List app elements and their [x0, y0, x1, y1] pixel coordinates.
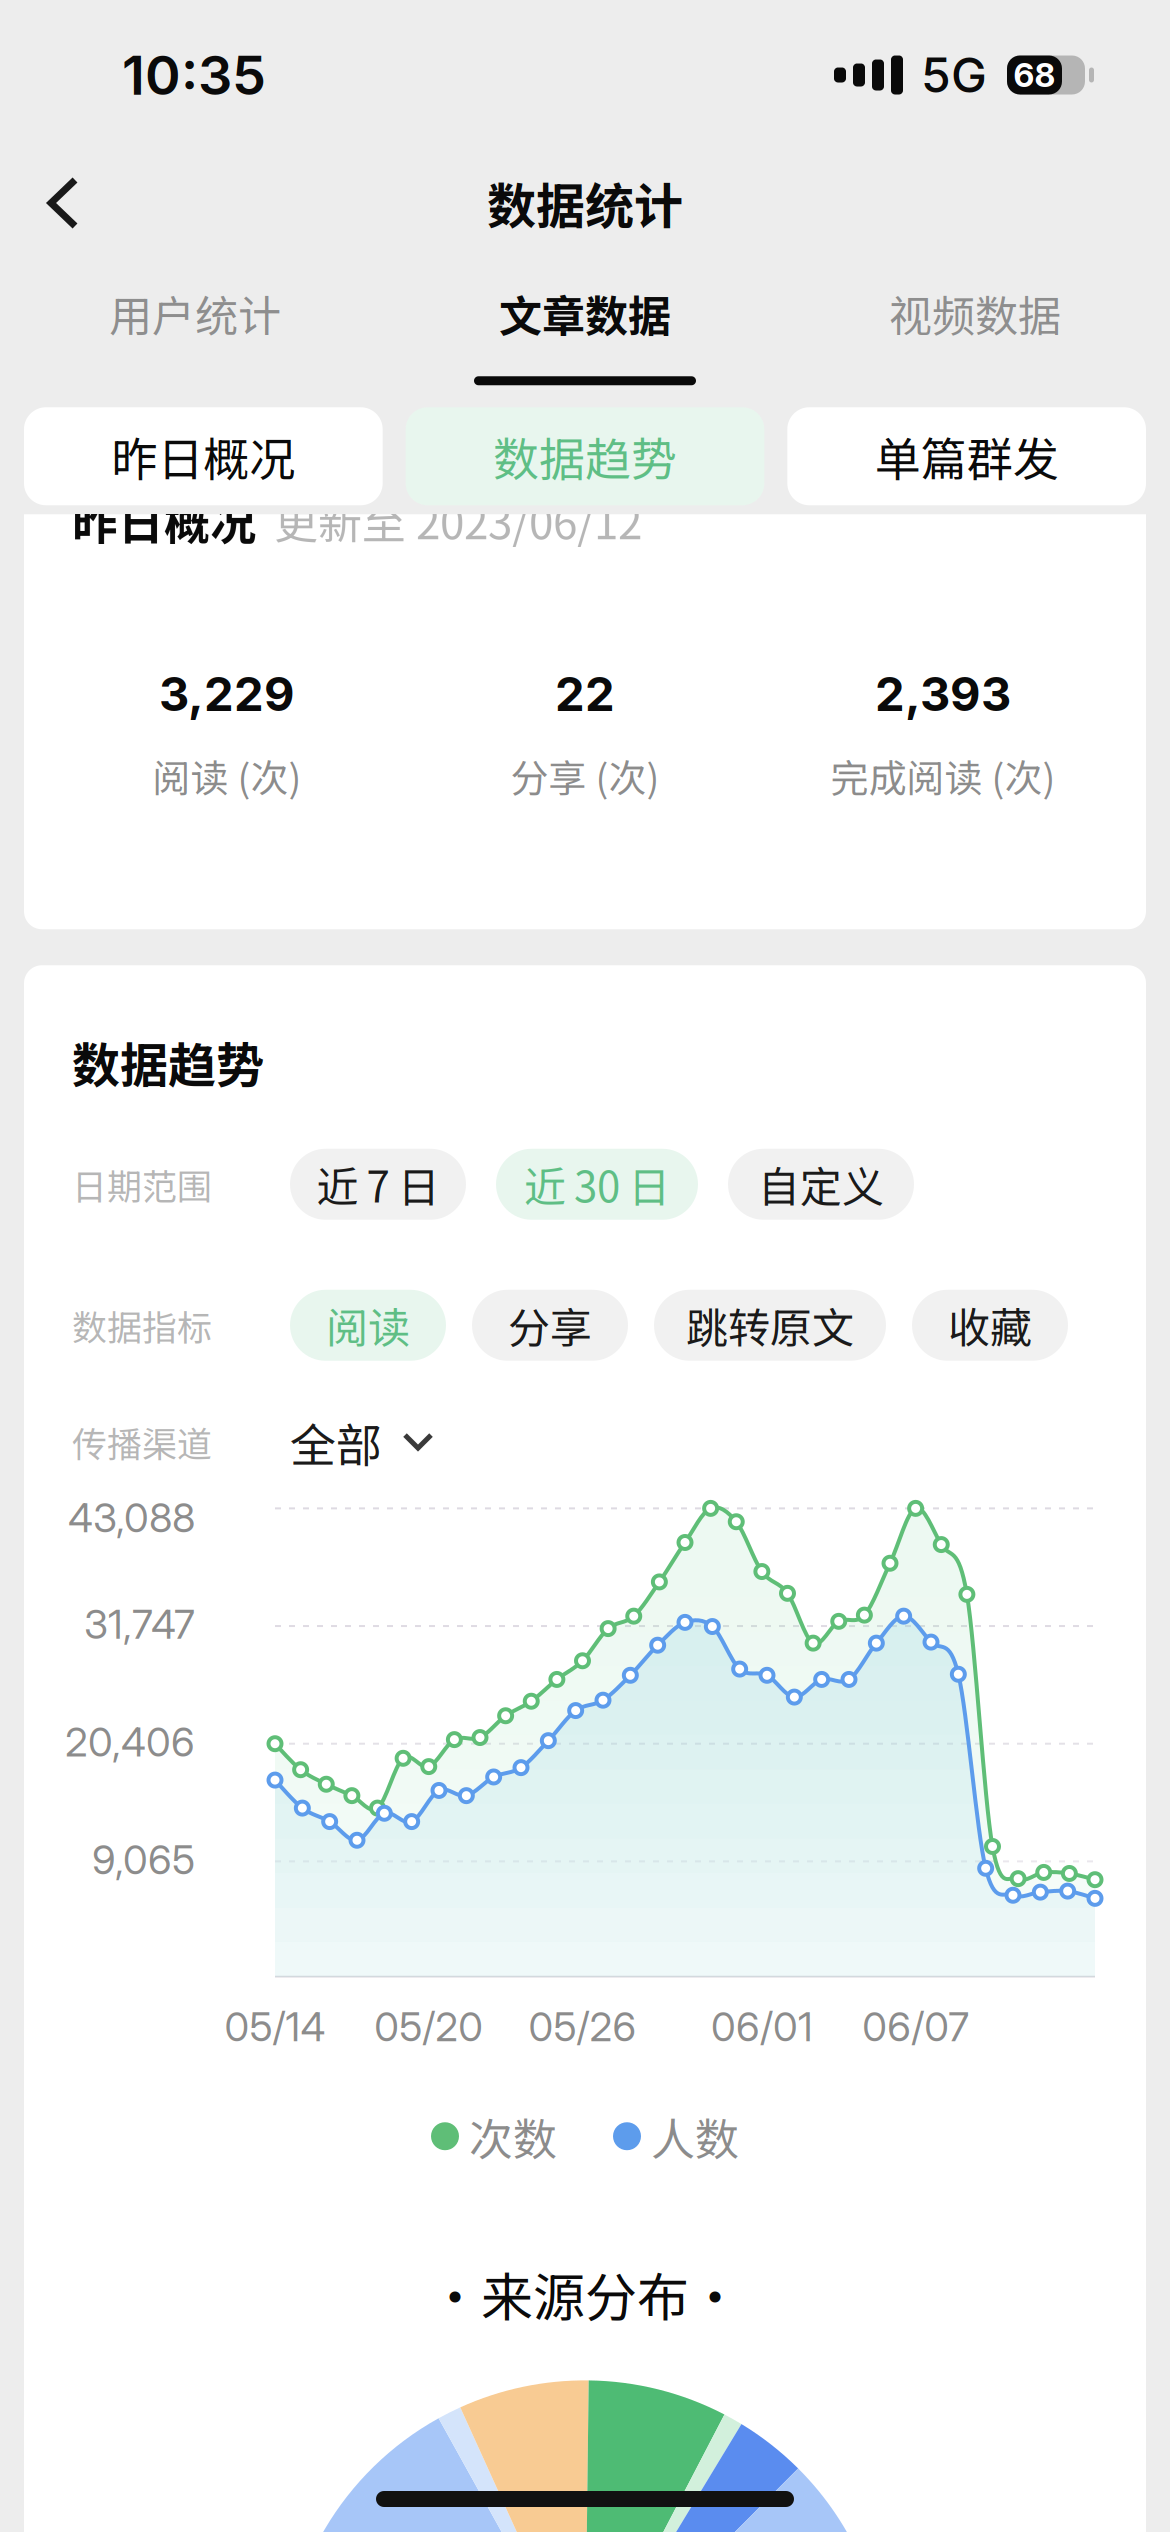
staticText: 文章数据 [499, 282, 671, 344]
button[interactable]: 用户统计 [0, 282, 390, 385]
staticText: 自定义 [758, 1154, 884, 1215]
button[interactable]: 阅读 [290, 1290, 446, 1361]
staticText: 数据趋势 [493, 423, 677, 490]
button[interactable]: 自定义 [728, 1149, 914, 1220]
staticText: 06/01 [711, 2002, 813, 2051]
button[interactable]: 文章数据 [390, 282, 780, 385]
staticText: 阅读 (次) [152, 748, 301, 803]
staticText: 2,393 [875, 665, 1011, 722]
staticText: 05/20 [374, 2002, 483, 2051]
button[interactable]: 近 7 日 [290, 1149, 466, 1220]
staticText: 31,747 [84, 1600, 195, 1648]
staticText: 视频数据 [889, 282, 1061, 344]
button[interactable]: 跳转原文 [654, 1290, 886, 1361]
staticText: 人数 [641, 2104, 739, 2168]
staticText: 分享 [508, 1295, 592, 1356]
staticText: 06/07 [862, 2002, 969, 2051]
staticText: 收藏 [948, 1295, 1032, 1356]
staticText: 更新至 2023/06/12 [274, 488, 642, 552]
staticText: 单篇群发 [875, 423, 1059, 490]
staticText: 数据统计 [487, 167, 683, 238]
staticText: 22 [555, 665, 615, 722]
staticText: 分享 (次) [510, 748, 659, 803]
staticText: 3,229 [159, 665, 295, 722]
staticText: 9,065 [92, 1835, 195, 1884]
staticText: ·来源分布· [429, 2256, 741, 2331]
staticText: 10:35 [122, 42, 266, 108]
staticText: 43,088 [68, 1493, 195, 1542]
staticText: 数据指标 [72, 1300, 212, 1351]
staticText: 数据趋势 [72, 1027, 264, 1097]
staticText: 完成阅读 (次) [830, 748, 1055, 803]
button[interactable]: 收藏 [912, 1290, 1068, 1361]
staticText: 昨日概况 [111, 423, 295, 490]
button[interactable]: 数据趋势 [406, 407, 764, 505]
staticText: 68 [1013, 55, 1055, 95]
staticText: 近 30 日 [524, 1154, 670, 1215]
staticText: 全部 [290, 1409, 382, 1475]
button[interactable]: Back [16, 156, 110, 250]
staticText: 近 7 日 [316, 1154, 439, 1215]
button[interactable]: 单篇群发 [787, 407, 1146, 505]
staticText: 次数 [459, 2104, 557, 2168]
button[interactable]: 昨日概况 [24, 407, 383, 505]
staticText: 日期范围 [72, 1159, 212, 1210]
staticText: 05/14 [224, 2002, 325, 2051]
staticText: 用户统计 [109, 282, 281, 344]
staticText: 传播渠道 [72, 1417, 212, 1467]
staticText: 20,406 [65, 1718, 195, 1766]
button[interactable]: 视频数据 [780, 282, 1170, 385]
button[interactable]: 近 30 日 [496, 1149, 698, 1220]
staticText: 阅读 [326, 1295, 410, 1356]
button[interactable]: 分享 [472, 1290, 628, 1361]
button[interactable]: 全部 [290, 1401, 434, 1483]
staticText: 跳转原文 [686, 1295, 854, 1356]
staticText: 05/26 [528, 2002, 636, 2051]
staticText: 5G [921, 46, 987, 104]
staticText: 昨日概况 [72, 487, 256, 553]
